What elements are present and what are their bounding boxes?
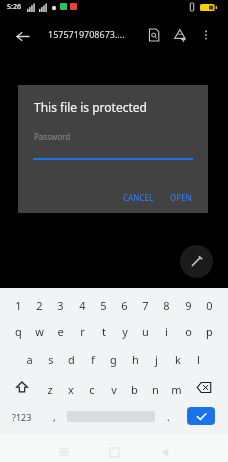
staticText: 0 xyxy=(206,298,213,313)
button[interactable]: m xyxy=(166,378,187,400)
staticText: j xyxy=(155,352,158,367)
button[interactable]: x xyxy=(60,378,81,400)
staticText: t xyxy=(102,324,106,339)
button[interactable]: , xyxy=(44,406,64,428)
staticText: h xyxy=(132,352,139,367)
button[interactable]: g xyxy=(103,348,124,370)
button[interactable]: e xyxy=(50,320,71,342)
staticText: 5:26 xyxy=(7,2,21,12)
staticText: 7 xyxy=(142,298,149,313)
button[interactable]: Shift xyxy=(11,376,33,398)
staticText: Password xyxy=(34,131,71,142)
button[interactable]: 8 xyxy=(156,294,177,316)
button[interactable]: j xyxy=(146,348,167,370)
button[interactable]: 0 xyxy=(199,294,220,316)
button[interactable]: Backspace xyxy=(192,376,216,398)
button[interactable]: . xyxy=(158,406,178,428)
button[interactable]: h xyxy=(125,348,146,370)
staticText: a xyxy=(26,352,33,367)
staticText: f xyxy=(91,352,95,367)
staticText: o xyxy=(185,324,192,339)
button[interactable]: a xyxy=(19,348,40,370)
button[interactable]: More options xyxy=(194,23,218,47)
button[interactable]: y xyxy=(114,320,135,342)
staticText: CANCEL xyxy=(123,192,154,203)
button[interactable]: CANCEL xyxy=(118,188,158,206)
button[interactable]: v xyxy=(103,378,124,400)
button[interactable]: w xyxy=(29,320,50,342)
staticText: This file is protected xyxy=(34,99,147,115)
button[interactable]: 9 xyxy=(178,294,199,316)
staticText: . xyxy=(167,410,170,424)
button[interactable]: p xyxy=(199,320,220,342)
button[interactable]: 7 xyxy=(135,294,156,316)
staticText: b xyxy=(131,382,138,397)
staticText: OPEN xyxy=(170,192,192,203)
button[interactable]: t xyxy=(93,320,114,342)
button[interactable]: 5 xyxy=(93,294,114,316)
button[interactable]: d xyxy=(61,348,82,370)
staticText: x xyxy=(68,382,74,397)
button[interactable]: q xyxy=(8,320,29,342)
staticText: p xyxy=(206,324,213,339)
staticText: ?123 xyxy=(12,411,32,423)
staticText: s xyxy=(48,352,54,367)
button[interactable]: b xyxy=(124,378,145,400)
staticText: l xyxy=(197,352,200,367)
button[interactable]: Back xyxy=(10,24,34,48)
staticText: r xyxy=(80,324,85,339)
staticText: i xyxy=(165,324,168,339)
staticText: w xyxy=(35,324,44,339)
staticText: e xyxy=(57,324,64,339)
staticText: m xyxy=(171,382,182,397)
staticText: 4 xyxy=(79,298,86,313)
staticText: v xyxy=(111,382,117,397)
button[interactable]: Edit xyxy=(180,245,213,278)
button[interactable]: r xyxy=(72,320,93,342)
staticText: g xyxy=(110,352,117,367)
button[interactable]: o xyxy=(178,320,199,342)
button[interactable]: 6 xyxy=(114,294,135,316)
button[interactable]: c xyxy=(81,378,102,400)
button[interactable]: 2 xyxy=(29,294,50,316)
staticText: 3 xyxy=(57,298,64,313)
button[interactable]: OPEN xyxy=(164,188,198,206)
button[interactable]: 4 xyxy=(72,294,93,316)
button[interactable]: Back xyxy=(152,440,176,462)
staticText: 6 xyxy=(121,298,128,313)
button[interactable]: Done xyxy=(187,407,215,425)
button[interactable]: l xyxy=(188,348,209,370)
staticText: y xyxy=(122,324,128,339)
staticText: z xyxy=(47,382,53,397)
button[interactable]: n xyxy=(145,378,166,400)
staticText: n xyxy=(152,382,159,397)
button[interactable]: k xyxy=(167,348,188,370)
button[interactable]: f xyxy=(82,348,103,370)
staticText: k xyxy=(175,352,181,367)
staticText: , xyxy=(53,410,56,424)
button[interactable]: 3 xyxy=(50,294,71,316)
button[interactable]: 1 xyxy=(8,294,29,316)
staticText: q xyxy=(15,324,22,339)
button[interactable]: z xyxy=(39,378,60,400)
staticText: 8 xyxy=(163,298,170,313)
staticText: 9 xyxy=(185,298,192,313)
staticText: 2 xyxy=(36,298,43,313)
button[interactable]: ?123 xyxy=(4,406,40,428)
staticText: 1 xyxy=(15,298,22,313)
button[interactable]: Add to Drive xyxy=(168,23,192,47)
button[interactable]: i xyxy=(156,320,177,342)
button[interactable]: Find in file xyxy=(142,23,166,47)
staticText: d xyxy=(68,352,75,367)
staticText: 5 xyxy=(100,298,107,313)
button[interactable]: u xyxy=(135,320,156,342)
button[interactable]: s xyxy=(40,348,61,370)
button[interactable]: Home xyxy=(102,440,126,462)
staticText: 1575719708673.... xyxy=(48,28,125,40)
staticText: c xyxy=(89,382,95,397)
staticText: u xyxy=(142,324,149,339)
button[interactable]: Recents xyxy=(52,440,76,462)
